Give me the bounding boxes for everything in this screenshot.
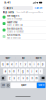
button[interactable]: FaceTime <box>0 20 46 27</box>
button[interactable]: l <box>39 68 43 74</box>
button[interactable]: d <box>12 68 16 74</box>
staticText: m <box>35 77 37 80</box>
staticText: x <box>14 77 15 80</box>
button[interactable]: e <box>10 61 14 67</box>
button[interactable]: v <box>21 75 25 81</box>
button[interactable]: r <box>14 61 18 67</box>
staticText: “apps” <box>5 57 11 59</box>
staticText: Send a message <box>7 18 22 20</box>
button[interactable]: w <box>5 61 9 67</box>
staticText: r <box>16 63 17 66</box>
staticText: w <box>6 63 8 66</box>
staticText: apples <box>35 57 41 59</box>
staticText: app <box>21 57 24 59</box>
button[interactable]: p <box>41 61 45 67</box>
staticText: p <box>42 63 44 66</box>
staticText: FaceTime <box>7 21 18 24</box>
button[interactable]: j <box>30 68 34 74</box>
staticText: i <box>34 63 35 66</box>
staticText: Top Hits <box>3 11 14 14</box>
button[interactable]: Cancel <box>34 6 43 9</box>
staticText: a <box>5 70 6 73</box>
button[interactable] <box>40 75 45 81</box>
button[interactable]: y <box>23 61 27 67</box>
staticText: Search in Mail, Messages and Notes <box>16 11 43 13</box>
staticText: d <box>13 70 15 73</box>
staticText: g <box>22 70 24 73</box>
staticText: 123 <box>2 84 5 87</box>
button[interactable]: f <box>16 68 20 74</box>
staticText: Cancel <box>34 6 43 9</box>
button[interactable]: c <box>16 75 20 81</box>
staticText: Run a shortcut <box>7 37 21 39</box>
staticText: space <box>21 84 26 87</box>
staticText: Shortcuts <box>7 34 20 37</box>
button[interactable]: g <box>21 68 25 74</box>
button[interactable]: Switch keyboard <box>6 82 10 88</box>
button[interactable]: t <box>19 61 23 67</box>
button[interactable]: Messages <box>0 14 46 20</box>
staticText: o <box>38 63 40 66</box>
button[interactable]: u <box>28 61 32 67</box>
staticText: l <box>40 70 41 73</box>
button[interactable]: apps <box>3 6 33 10</box>
button[interactable]: m <box>34 75 38 81</box>
staticText: v <box>22 77 23 80</box>
button[interactable]: n <box>30 75 34 81</box>
button[interactable]: “apps” <box>0 55 15 61</box>
button[interactable]: 123 <box>1 82 6 88</box>
staticText: y <box>25 63 26 66</box>
staticText: e <box>11 63 12 66</box>
staticText: c <box>18 77 19 80</box>
button[interactable]: a <box>3 68 7 74</box>
staticText: b <box>26 77 28 80</box>
button[interactable]: b <box>25 75 29 81</box>
staticText: Create a reminder <box>7 30 24 33</box>
staticText: search <box>38 84 44 87</box>
button[interactable]: q <box>1 61 5 67</box>
staticText: z <box>9 77 10 80</box>
staticText: s <box>9 70 10 73</box>
button[interactable]: Shortcuts <box>0 33 46 40</box>
staticText: q <box>2 63 4 66</box>
button[interactable]: i <box>32 61 36 67</box>
staticText: n <box>31 77 32 80</box>
staticText: t <box>20 63 21 66</box>
staticText: apps <box>6 6 12 9</box>
staticText: u <box>29 63 30 66</box>
button[interactable] <box>1 75 6 81</box>
staticText: 9:41 <box>4 1 10 4</box>
staticText: Start a video call <box>7 24 22 26</box>
button[interactable]: k <box>34 68 38 74</box>
staticText: j <box>31 70 32 73</box>
staticText: f <box>18 70 19 73</box>
button[interactable]: Reminders <box>0 27 46 33</box>
button[interactable]: apples <box>31 55 46 61</box>
button[interactable]: h <box>25 68 29 74</box>
staticText: h <box>27 70 28 73</box>
button[interactable]: x <box>12 75 16 81</box>
button[interactable]: app <box>15 55 31 61</box>
button[interactable]: search <box>37 82 45 88</box>
button[interactable]: o <box>37 61 41 67</box>
staticText: Messages <box>7 14 19 17</box>
button[interactable]: z <box>8 75 12 81</box>
staticText: k <box>36 70 37 73</box>
button[interactable]: space <box>11 82 36 88</box>
button[interactable]: s <box>8 68 12 74</box>
staticText: Reminders <box>7 27 22 30</box>
